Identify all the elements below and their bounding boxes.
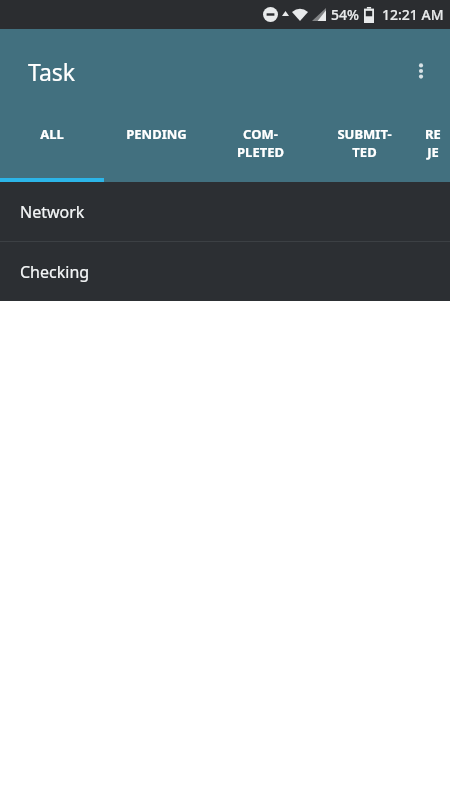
staticText: 12:21 AM — [382, 5, 444, 24]
button[interactable]: PENDING — [104, 113, 208, 182]
staticText: Network — [20, 201, 85, 223]
button[interactable]: COM- — [208, 113, 312, 182]
staticText: RE — [425, 125, 441, 143]
staticText: TED — [352, 143, 377, 161]
staticText: Task — [28, 56, 76, 87]
button[interactable]: Checking — [0, 242, 450, 301]
button[interactable]: Network — [0, 182, 450, 241]
staticText: SUBMIT- — [337, 125, 392, 143]
staticText: COM- — [243, 125, 278, 143]
staticText: ALL — [40, 125, 64, 143]
staticText: PLETED — [237, 143, 284, 161]
staticText: 54% — [331, 5, 359, 24]
button[interactable]: SUBMIT- — [312, 113, 416, 182]
button[interactable]: RE — [416, 113, 450, 182]
button[interactable]: ALL — [0, 113, 104, 182]
staticText: Checking — [20, 261, 90, 283]
staticText: JE — [427, 143, 439, 161]
button[interactable]: More options — [399, 49, 443, 93]
staticText: PENDING — [126, 125, 187, 143]
